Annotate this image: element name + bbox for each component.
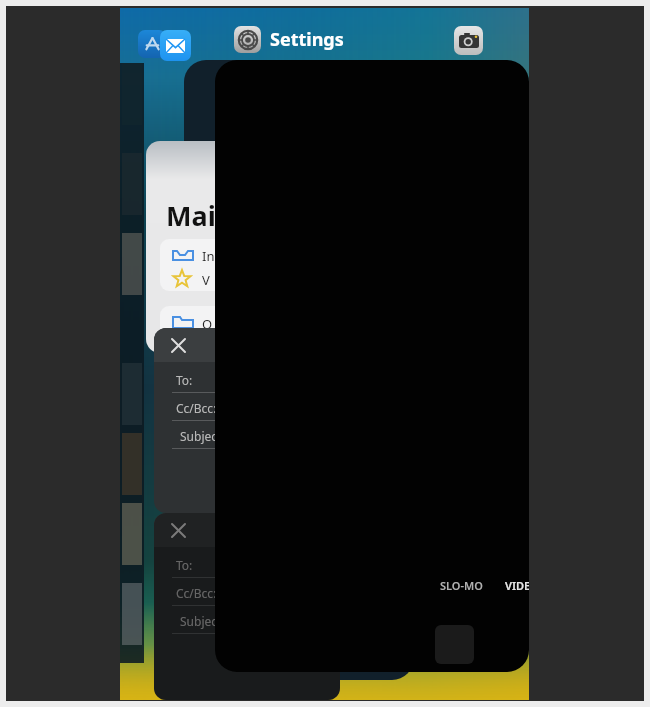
staticText: In bbox=[202, 247, 215, 265]
staticText: Cc/Bcc: bbox=[176, 585, 217, 601]
staticText: Cc/Bcc: bbox=[176, 400, 217, 416]
button[interactable]: Mail bbox=[160, 30, 191, 61]
button[interactable]: SLO-MO bbox=[440, 578, 483, 593]
staticText: Subject: N bbox=[180, 428, 237, 444]
staticText: Mailb bbox=[166, 197, 241, 234]
button[interactable]: Last photo bbox=[435, 625, 474, 664]
button[interactable]: Camera bbox=[454, 26, 483, 55]
staticText: To: bbox=[176, 557, 193, 573]
staticText: Subject: bbox=[180, 613, 225, 629]
button[interactable]: To: bbox=[154, 513, 340, 700]
button[interactable] bbox=[184, 60, 414, 680]
button[interactable]: Flash off bbox=[215, 60, 529, 672]
button[interactable]: Mailb bbox=[146, 141, 336, 353]
staticText: To: bbox=[176, 372, 193, 388]
button[interactable]: To: bbox=[154, 328, 340, 513]
staticText: Settings bbox=[270, 27, 344, 52]
staticText: V bbox=[202, 271, 210, 289]
button[interactable]: Settings bbox=[234, 26, 344, 53]
staticText: O bbox=[202, 315, 213, 333]
button[interactable]: VIDE bbox=[505, 578, 529, 593]
button[interactable]: App Store bbox=[138, 30, 166, 58]
